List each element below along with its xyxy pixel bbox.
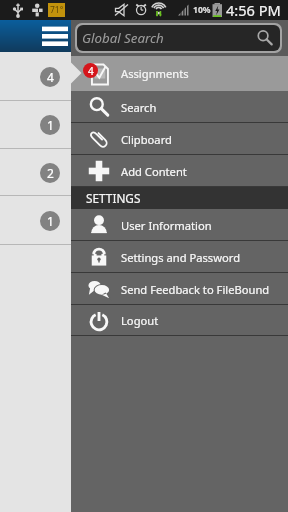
button[interactable]: Clipboard <box>71 123 288 155</box>
staticText: 1 <box>47 213 54 229</box>
button[interactable]: User Information <box>71 209 288 241</box>
staticText: 4:56 PM <box>226 0 281 20</box>
staticText: 10% <box>193 4 211 16</box>
button[interactable]: Open navigation menu <box>0 20 71 52</box>
staticText: 1 <box>47 117 54 133</box>
staticText: Add Content <box>121 164 187 179</box>
staticText: Send Feedback to FileBound <box>121 282 270 297</box>
button[interactable]: Send Feedback to FileBound <box>71 273 288 305</box>
other: Search <box>257 30 273 46</box>
button[interactable]: Logout <box>71 305 288 336</box>
staticText: Search <box>121 100 157 115</box>
button[interactable]: 1 <box>0 196 71 245</box>
staticText: 71° <box>50 4 64 16</box>
button[interactable]: Search <box>71 91 288 123</box>
button[interactable]: Global Search <box>77 25 280 51</box>
staticText: User Information <box>121 218 212 233</box>
staticText: Clipboard <box>121 132 172 147</box>
staticText: Logout <box>121 313 159 328</box>
staticText: 4 <box>47 69 54 85</box>
staticText: 2 <box>47 165 54 181</box>
button[interactable]: 4 <box>71 56 288 91</box>
staticText: Settings and Password <box>121 250 241 265</box>
staticText: 4 <box>88 64 94 78</box>
staticText: SETTINGS <box>86 190 141 206</box>
button[interactable]: 4 <box>0 52 71 101</box>
button[interactable]: 2 <box>0 149 71 196</box>
staticText: Assignments <box>121 66 189 81</box>
button[interactable]: 1 <box>0 101 71 149</box>
button[interactable]: Add Content <box>71 155 288 187</box>
button[interactable]: Settings and Password <box>71 241 288 273</box>
staticText: Global Search <box>82 29 164 47</box>
